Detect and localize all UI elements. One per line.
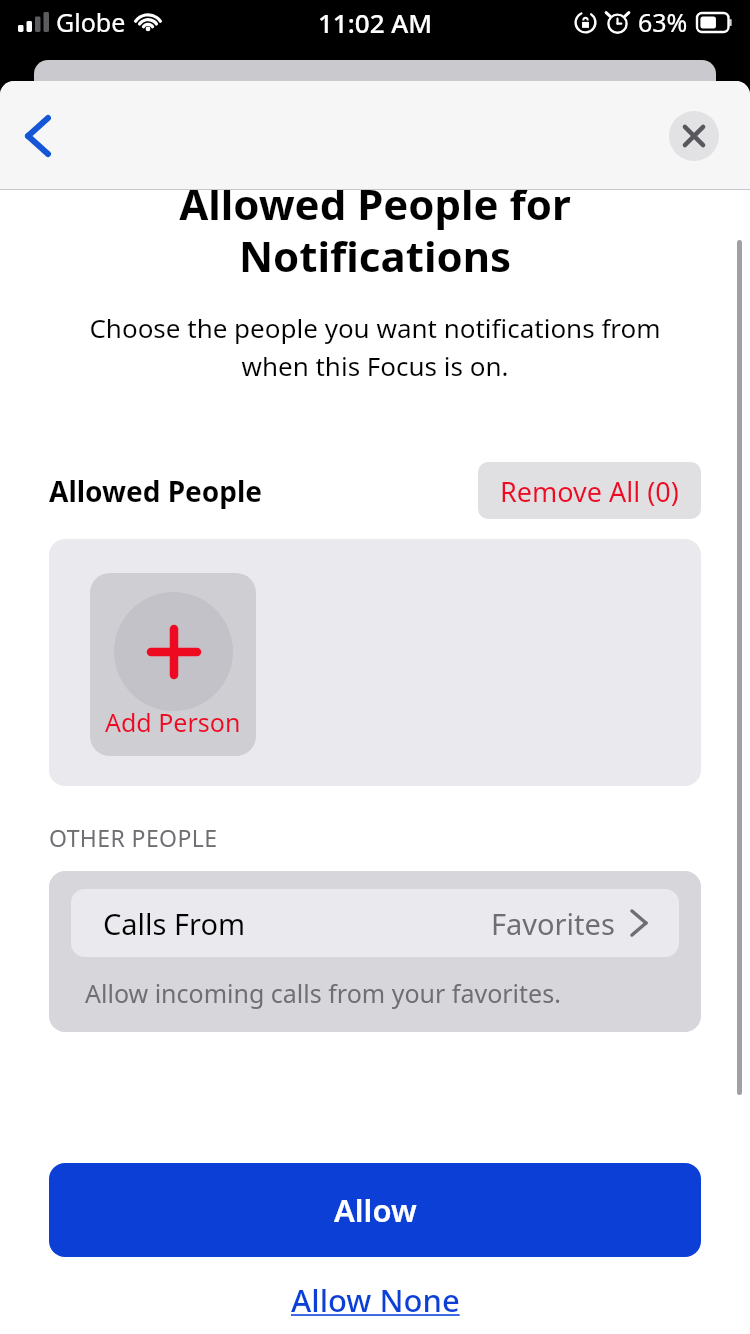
staticText: Allow incoming calls from your favorites… — [85, 976, 561, 1010]
staticText: Allow None — [291, 1279, 460, 1321]
staticText: Allowed People — [49, 472, 263, 510]
staticText: 11:02 AM — [318, 5, 433, 40]
staticText: 63% — [638, 5, 688, 39]
staticText: Remove All (0) — [500, 473, 679, 508]
staticText: Favorites — [491, 904, 615, 943]
button[interactable]: Close — [669, 111, 719, 161]
button[interactable]: Allow None — [271, 1271, 480, 1329]
staticText: Choose the people you want notifications… — [58, 310, 692, 383]
button[interactable]: Calls From — [71, 889, 679, 957]
staticText: Add Person — [105, 705, 241, 739]
button[interactable]: Allow — [49, 1163, 701, 1257]
button[interactable]: Add Person — [90, 573, 256, 756]
button[interactable]: Back — [6, 104, 70, 168]
staticText: Globe — [56, 5, 126, 39]
staticText: Calls From — [103, 904, 246, 943]
button[interactable]: Remove All (0) — [478, 462, 701, 519]
staticText: Allow — [334, 1189, 417, 1231]
staticText: Allowed People for Notifications — [40, 175, 710, 284]
staticText: OTHER PEOPLE — [49, 822, 218, 853]
